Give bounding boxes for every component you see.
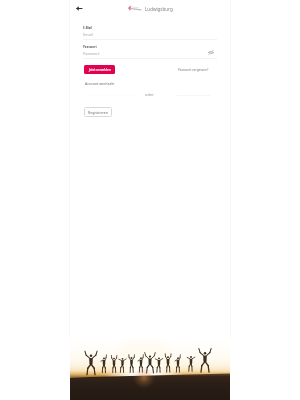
staticText: Ludwigsburg xyxy=(145,6,173,12)
staticText: Passwort xyxy=(83,51,100,56)
staticText: Passwort xyxy=(83,45,97,49)
button[interactable]: Back xyxy=(73,3,84,14)
staticText: Registrieren xyxy=(88,110,108,115)
button[interactable]: Show password xyxy=(206,49,215,56)
staticText: Passwort vergessen? xyxy=(178,68,209,72)
staticText: Email xyxy=(83,32,93,37)
staticText: E-Mail xyxy=(83,26,93,30)
staticText: Jetzt anmelden xyxy=(89,68,111,72)
button[interactable]: Passwort vergessen? xyxy=(177,65,210,74)
staticText: Account wechseln xyxy=(85,81,115,86)
button[interactable]: Account wechseln xyxy=(84,80,116,87)
staticText: oder xyxy=(145,92,154,97)
button[interactable]: Registrieren xyxy=(84,107,112,117)
button[interactable]: Jetzt anmelden xyxy=(84,65,115,74)
